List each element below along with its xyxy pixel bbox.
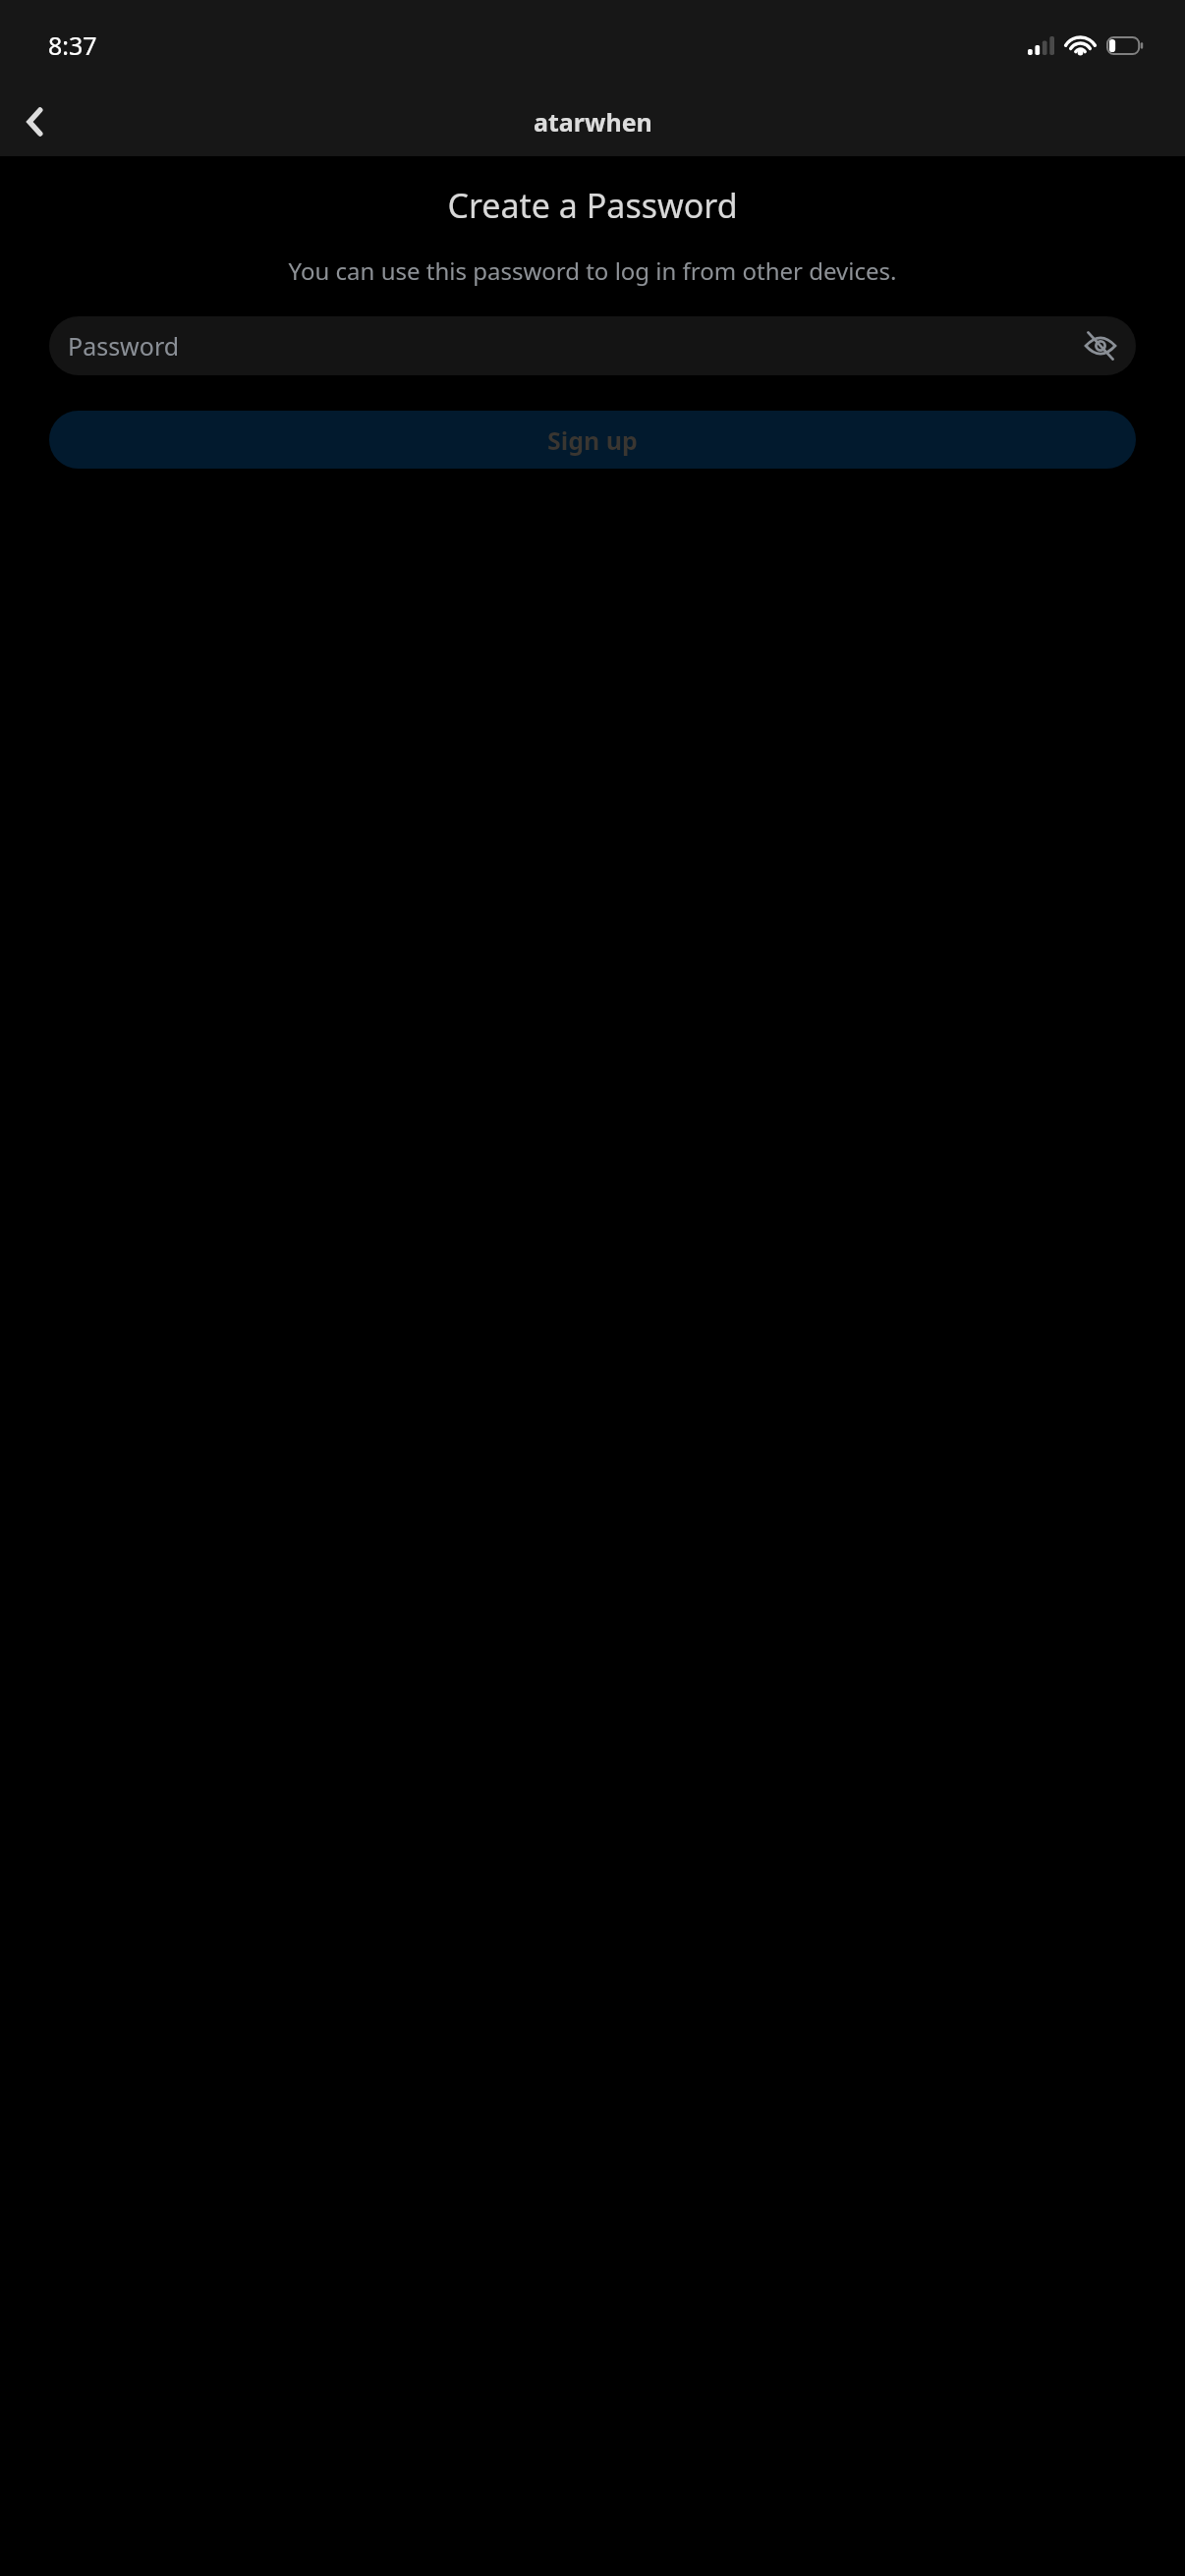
staticText: Password: [68, 329, 180, 363]
staticText: 8:37: [48, 28, 97, 62]
button[interactable]: Back: [8, 94, 63, 149]
staticText: atarwhen: [534, 105, 652, 139]
button[interactable]: Show password: [1079, 324, 1122, 367]
staticText: Create a Password: [0, 183, 1185, 228]
button[interactable]: Password: [49, 316, 1136, 375]
staticText: Sign up: [547, 423, 638, 457]
button[interactable]: Sign up: [49, 411, 1136, 469]
staticText: You can use this password to log in from…: [47, 254, 1138, 287]
